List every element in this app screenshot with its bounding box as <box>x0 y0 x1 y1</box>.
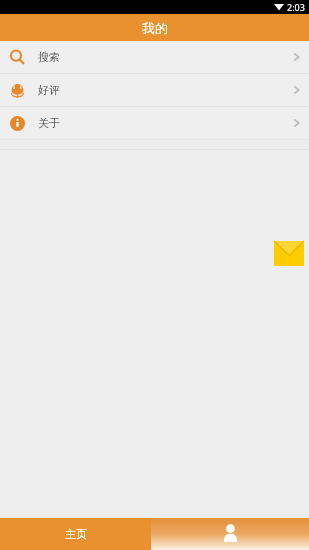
staticText: 主页 <box>65 527 87 541</box>
button[interactable]: Profile <box>151 518 309 550</box>
button[interactable]: 搜索 <box>0 41 309 73</box>
staticText: 搜索 <box>38 50 60 64</box>
staticText: 好评 <box>38 83 60 97</box>
button[interactable]: Message <box>274 241 304 266</box>
staticText: 2:03 <box>287 1 305 13</box>
button[interactable]: 主页 <box>0 518 151 550</box>
button[interactable]: 关于 <box>0 107 309 139</box>
staticText: 我的 <box>142 20 168 36</box>
button[interactable]: 好评 <box>0 74 309 106</box>
staticText: 关于 <box>38 116 60 130</box>
